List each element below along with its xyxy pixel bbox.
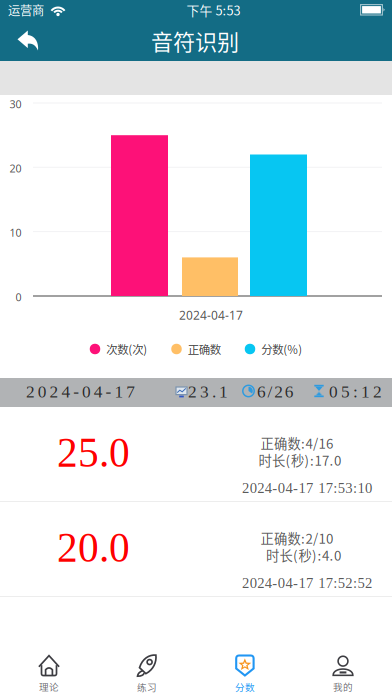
staticText: 0: [15, 290, 21, 304]
staticText: 30: [9, 97, 21, 111]
staticText: 我的: [333, 679, 353, 693]
staticText: 2024-04-17: [26, 382, 135, 401]
staticText: 分数: [235, 680, 255, 694]
staticText: 10: [9, 225, 21, 240]
staticText: 时长(秒):4.0: [266, 545, 341, 565]
staticText: 音符识别: [151, 24, 239, 56]
button[interactable]: 25.0: [0, 407, 392, 502]
staticText: 理论: [39, 679, 59, 693]
button[interactable]: 20.0: [0, 502, 392, 597]
staticText: 20: [9, 161, 21, 175]
staticText: 23.1: [188, 382, 228, 401]
button[interactable]: 分数: [196, 640, 294, 696]
staticText: 正确数:2/10: [260, 528, 333, 548]
button[interactable]: 返回: [0, 20, 51, 61]
button[interactable]: 我的: [294, 640, 392, 696]
staticText: 6/26: [257, 382, 294, 401]
staticText: 时长(秒):17.0: [258, 450, 341, 470]
staticText: 正确数: [188, 341, 221, 357]
staticText: 正确数:4/16: [260, 433, 333, 453]
button[interactable]: 理论: [0, 640, 98, 696]
staticText: 2024-04-17: [179, 307, 243, 323]
staticText: 下午 5:53: [186, 1, 240, 19]
staticText: 运营商: [8, 1, 44, 19]
staticText: 2024-04-17 17:52:52: [242, 575, 372, 591]
staticText: 20.0: [57, 525, 130, 571]
staticText: 25.0: [57, 430, 130, 476]
staticText: 练习: [137, 680, 157, 694]
button[interactable]: 练习: [98, 640, 196, 696]
staticText: 次数(次): [106, 341, 147, 357]
staticText: 05:12: [329, 382, 382, 401]
staticText: 2024-04-17 17:53:10: [242, 480, 372, 496]
staticText: 分数(%): [261, 341, 302, 357]
